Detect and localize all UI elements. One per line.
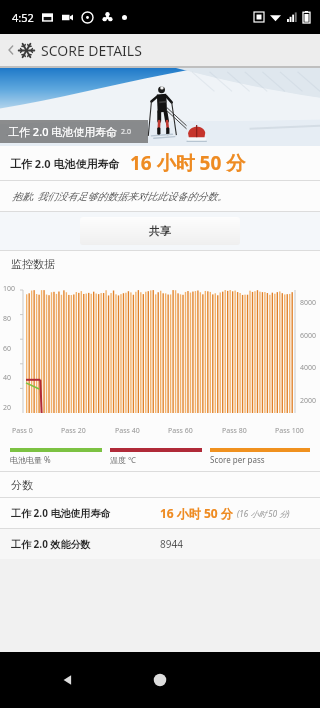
staticText: Pass 60 [168,426,193,436]
staticText: (16 小时 50 分) [237,508,290,519]
staticText: Pass 100 [275,426,304,436]
staticText: 4000 [300,363,317,373]
button[interactable]: 工作 2.0 电池使用寿命 [0,498,320,528]
staticText: 2.0 [121,127,131,137]
staticText: 工作 2.0 效能分数 [11,537,91,551]
staticText: 6000 [300,331,317,341]
staticText: SCORE DETAILS [41,41,142,60]
staticText: 工作 2.0 电池使用寿命 [11,506,111,520]
staticText: 工作 2.0 电池使用寿命 [8,124,118,139]
button[interactable]: Home [147,667,173,693]
staticText: 60 [3,344,12,354]
staticText: 分数 [11,478,33,492]
staticText: 共享 [149,224,171,238]
staticText: 16 小时 50 分 [130,150,246,176]
staticText: 电池电量 % [10,454,51,465]
staticText: 16 小时 50 分 [160,505,233,521]
staticText: 8944 [160,537,183,551]
staticText: Pass 40 [115,426,140,436]
button[interactable]: 工作 2.0 效能分数 [0,529,320,559]
button[interactable]: 共享 [80,217,240,245]
staticText: 8000 [300,298,317,308]
staticText: 监控数据 [11,257,55,271]
staticText: 100 [3,284,16,294]
staticText: 2000 [300,396,317,406]
button[interactable]: Back [55,667,81,693]
staticText: 工作 2.0 电池使用寿命 [10,156,120,171]
staticText: 40 [3,373,12,383]
staticText: 80 [3,314,12,324]
other: Back [4,43,18,57]
staticText: Pass 80 [222,426,247,436]
staticText: Score per pass [210,454,265,465]
staticText: 抱歉, 我们没有足够的数据来对比此设备的分数。 [12,189,228,203]
staticText: 20 [3,403,12,413]
button[interactable]: Back [0,34,320,66]
staticText: 4:52 [12,10,34,25]
staticText: 温度 ℃ [110,454,137,465]
staticText: Pass 0 [12,426,33,436]
staticText: Pass 20 [61,426,86,436]
